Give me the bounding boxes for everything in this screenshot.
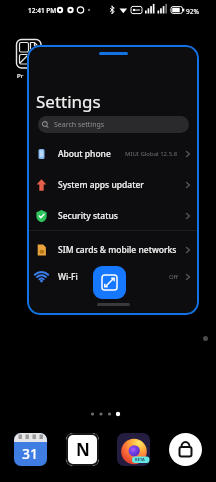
staticText: MIUI Global 12.5.8 <box>125 150 178 158</box>
staticText: Settings <box>36 90 101 113</box>
button[interactable]: 31 <box>14 433 47 466</box>
staticText: Security status <box>58 210 118 222</box>
button[interactable]: BETA <box>117 433 150 466</box>
staticText: Wi-Fi <box>58 271 78 283</box>
button[interactable]: SIM cards & mobile networks <box>38 235 189 264</box>
button[interactable]: N <box>66 433 99 466</box>
staticText: Search settings <box>54 120 105 130</box>
staticText: 12:41 PM <box>28 6 57 15</box>
staticText: Pr <box>17 72 24 80</box>
button[interactable]: System apps updater <box>38 169 189 200</box>
button[interactable]: About phone <box>38 138 189 169</box>
staticText: SIM cards & mobile networks <box>58 244 177 256</box>
button[interactable]: Wi-Fi <box>38 264 189 290</box>
button[interactable]: Security status <box>38 200 189 231</box>
staticText: 31 <box>22 444 39 463</box>
button[interactable] <box>169 433 202 466</box>
staticText: System apps updater <box>58 179 144 191</box>
staticText: 92% <box>186 7 199 16</box>
button[interactable]: Search settings <box>38 116 189 133</box>
button[interactable] <box>93 266 126 299</box>
staticText: N <box>76 438 90 461</box>
staticText: BETA <box>135 457 145 462</box>
staticText: Off <box>169 273 178 281</box>
staticText: About phone <box>58 148 111 160</box>
